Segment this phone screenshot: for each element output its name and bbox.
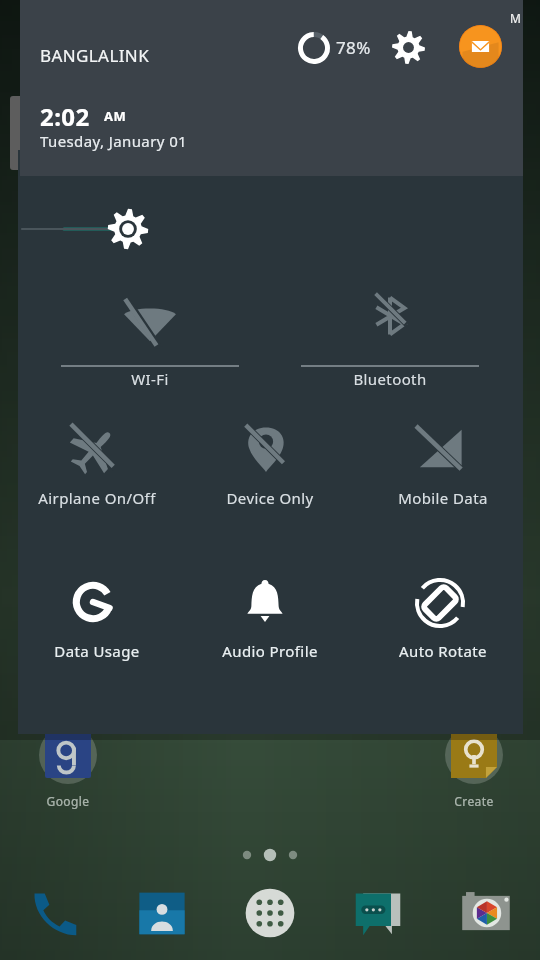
staticText: Create <box>436 793 512 809</box>
button[interactable]: Settings <box>392 31 425 64</box>
button[interactable]: Airplane On/Off <box>18 418 176 523</box>
staticText: Auto Rotate <box>364 641 522 661</box>
staticText: Bluetooth <box>280 369 500 389</box>
staticText: Google <box>30 793 106 809</box>
button[interactable]: Audio Profile <box>191 571 349 676</box>
staticText: Device Only <box>191 488 349 508</box>
staticText: 2:02 <box>40 100 130 133</box>
button[interactable]: Device Only <box>191 418 349 523</box>
button[interactable]: Battery 78 percent <box>298 32 330 64</box>
staticText: Audio Profile <box>191 641 349 661</box>
button[interactable]: Contacts <box>130 884 194 942</box>
staticText: 78% <box>336 36 396 59</box>
staticText: M <box>510 10 534 26</box>
button[interactable]: App <box>436 728 512 788</box>
button[interactable]: Mobile Data <box>364 418 522 523</box>
button[interactable]: Camera <box>454 884 518 942</box>
staticText: Mobile Data <box>364 488 522 508</box>
button[interactable]: Bluetooth <box>280 290 500 405</box>
staticText: Data Usage <box>18 641 176 661</box>
button[interactable]: WI-Fi <box>40 290 260 405</box>
staticText: WI-Fi <box>40 369 260 389</box>
button[interactable]: App <box>30 728 106 788</box>
button[interactable]: Data Usage <box>18 571 176 676</box>
button[interactable]: Messaging <box>346 884 410 942</box>
staticText: BANGLALINK <box>40 44 280 67</box>
button[interactable]: Phone <box>22 884 86 942</box>
button[interactable]: All apps <box>238 884 302 942</box>
staticText: Airplane On/Off <box>18 488 176 508</box>
staticText: AM <box>104 107 154 125</box>
button[interactable]: Auto Rotate <box>364 571 522 676</box>
button[interactable]: Account <box>459 25 502 68</box>
staticText: Tuesday, January 01 <box>40 131 340 151</box>
